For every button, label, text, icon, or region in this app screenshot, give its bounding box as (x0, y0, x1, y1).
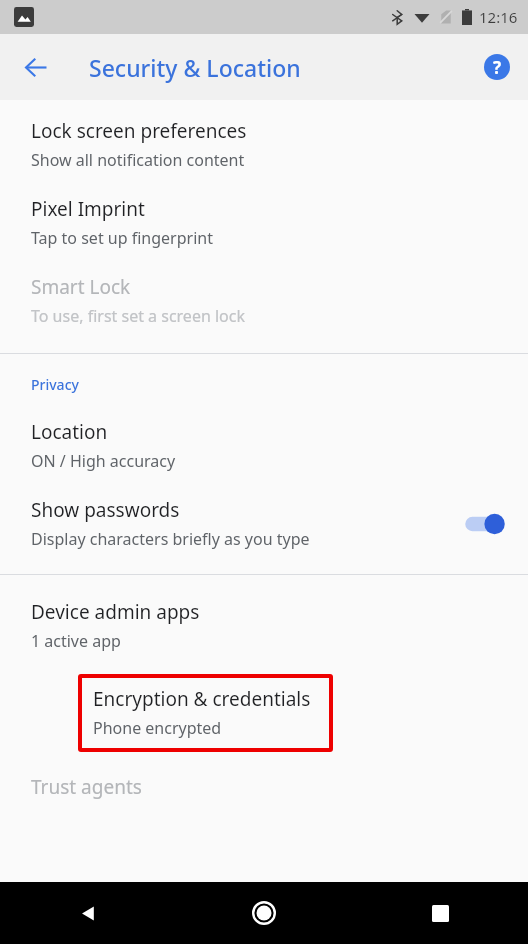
button[interactable]: Pixel Imprint (0, 196, 528, 249)
button[interactable]: Encryption & credentials (78, 674, 333, 752)
staticText: Show all notification content (31, 149, 245, 171)
staticText: ? (493, 56, 502, 79)
button[interactable]: Smart Lock (0, 274, 528, 327)
staticText: Location (31, 419, 108, 445)
staticText: Pixel Imprint (31, 196, 145, 222)
staticText: Phone encrypted (93, 717, 222, 739)
staticText: 12:16 (479, 7, 518, 27)
button[interactable]: Lock screen preferences (0, 118, 528, 171)
button[interactable]: Home (176, 882, 352, 944)
button[interactable]: Back (0, 882, 176, 944)
button[interactable]: Help (474, 44, 520, 90)
staticText: Show passwords (31, 497, 180, 523)
button[interactable]: Location (0, 419, 528, 472)
staticText: 1 active app (31, 630, 121, 652)
button[interactable] (458, 507, 510, 541)
staticText: Tap to set up fingerprint (31, 227, 213, 249)
staticText: Display characters briefly as you type (31, 528, 310, 550)
button[interactable]: Recent apps (352, 882, 528, 944)
staticText: Trust agents (31, 774, 142, 800)
button[interactable]: Show passwords (0, 497, 528, 550)
button[interactable]: Back (12, 43, 60, 91)
staticText: Device admin apps (31, 599, 200, 625)
staticText: ON / High accuracy (31, 450, 176, 472)
button[interactable]: Privacy (0, 375, 528, 394)
staticText: Lock screen preferences (31, 118, 247, 144)
button[interactable]: Device admin apps (0, 599, 528, 652)
staticText: Security & Location (89, 52, 301, 83)
staticText: To use, first set a screen lock (31, 305, 246, 327)
staticText: Privacy (31, 375, 79, 394)
button[interactable]: Trust agents (0, 774, 528, 800)
staticText: Smart Lock (31, 274, 131, 300)
staticText: Encryption & credentials (93, 686, 311, 712)
